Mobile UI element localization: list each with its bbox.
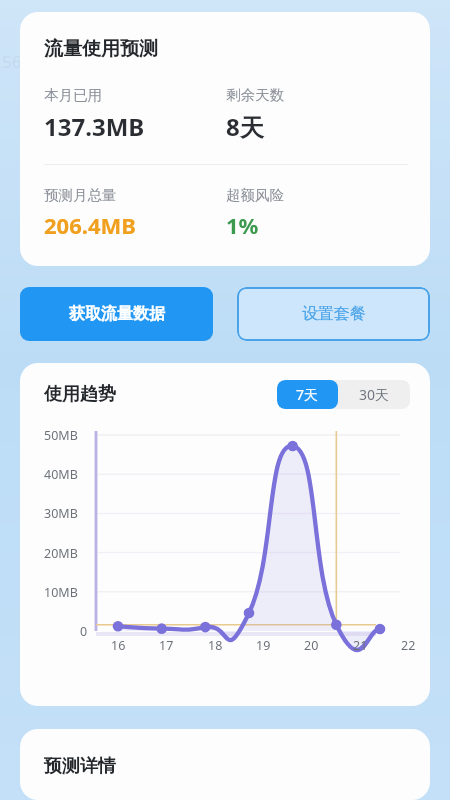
staticText: 19 bbox=[256, 637, 271, 654]
staticText: 预测详情 bbox=[44, 755, 116, 778]
staticText: 剩余天数 bbox=[226, 86, 284, 104]
staticText: 7天 bbox=[296, 385, 319, 404]
staticText: 预测月总量 bbox=[44, 186, 117, 204]
staticText: 20MB bbox=[44, 545, 78, 562]
staticText: 8天 bbox=[226, 110, 264, 143]
staticText: 16 bbox=[111, 637, 126, 654]
staticText: 30MB bbox=[44, 505, 78, 522]
staticText: 18 bbox=[208, 637, 223, 654]
button[interactable]: 7天 bbox=[277, 380, 338, 409]
button[interactable]: 设置套餐 bbox=[237, 287, 430, 341]
staticText: 流量使用预测 bbox=[44, 37, 158, 61]
staticText: 20 bbox=[304, 637, 319, 654]
staticText: 137.3MB bbox=[44, 110, 145, 143]
staticText: 56bc bbox=[2, 50, 41, 73]
staticText: 使用趋势 bbox=[44, 383, 116, 406]
staticText: 获取流量数据 bbox=[69, 304, 165, 324]
staticText: 设置套餐 bbox=[302, 304, 366, 324]
staticText: 10MB bbox=[44, 584, 78, 601]
staticText: 206.4MB bbox=[44, 210, 136, 240]
staticText: 1% bbox=[226, 210, 259, 240]
staticText: 30天 bbox=[359, 385, 390, 404]
staticText: 17 bbox=[159, 637, 174, 654]
staticText: 本月已用 bbox=[44, 86, 102, 104]
staticText: 50MB bbox=[44, 427, 78, 444]
staticText: 超额风险 bbox=[226, 186, 284, 204]
staticText: 21 bbox=[353, 637, 368, 654]
button[interactable]: 30天 bbox=[338, 380, 410, 409]
staticText: 0 bbox=[80, 623, 88, 640]
button[interactable]: 获取流量数据 bbox=[20, 287, 213, 341]
staticText: 22 bbox=[401, 637, 416, 654]
staticText: 40MB bbox=[44, 466, 78, 483]
